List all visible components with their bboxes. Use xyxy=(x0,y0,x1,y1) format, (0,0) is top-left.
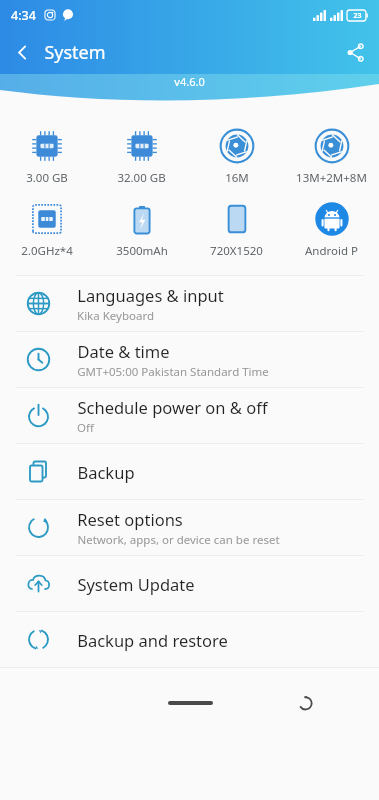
button[interactable]: 16M xyxy=(189,127,284,186)
staticText: Reset options xyxy=(77,508,183,530)
staticText: System Update xyxy=(77,573,195,595)
staticText: 32.00 GB xyxy=(117,170,166,186)
button[interactable]: 2.0GHz*4 xyxy=(0,200,94,259)
staticText: GMT+05:00 Pakistan Standard Time xyxy=(77,364,269,380)
staticText: Backup xyxy=(77,461,135,483)
staticText: System xyxy=(44,40,106,65)
button[interactable]: 720X1520 xyxy=(189,200,284,259)
staticText: Network, apps, or device can be reset xyxy=(77,532,280,548)
button[interactable]: Home xyxy=(145,683,235,723)
staticText: Schedule power on & off xyxy=(77,396,268,418)
button[interactable]: Back xyxy=(0,30,44,74)
staticText: 3.00 GB xyxy=(26,170,68,186)
staticText: Languages & input xyxy=(77,284,224,306)
button[interactable]: Back xyxy=(287,683,327,723)
staticText: 720X1520 xyxy=(210,243,263,259)
staticText: v4.6.0 xyxy=(174,74,205,89)
button[interactable]: Date & time xyxy=(0,332,379,387)
button[interactable]: Backup and restore xyxy=(0,612,379,667)
staticText: 13M+2M+8M xyxy=(296,170,367,186)
staticText: 4:34 xyxy=(11,7,36,24)
button[interactable]: Share xyxy=(331,30,379,74)
button[interactable]: Schedule power on & off xyxy=(0,388,379,443)
button[interactable]: 13M+2M+8M xyxy=(284,127,379,186)
staticText: 3500mAh xyxy=(116,243,168,259)
staticText: Off xyxy=(77,420,94,436)
staticText: Date & time xyxy=(77,340,170,362)
button[interactable]: Reset options xyxy=(0,500,379,555)
button[interactable]: 3500mAh xyxy=(94,200,189,259)
staticText: Backup and restore xyxy=(77,629,228,651)
button[interactable]: 32.00 GB xyxy=(94,127,189,186)
staticText: 16M xyxy=(225,170,249,186)
button[interactable]: Languages & input xyxy=(0,276,379,331)
button[interactable]: 3.00 GB xyxy=(0,127,94,186)
staticText: 23 xyxy=(353,11,362,21)
staticText: 2.0GHz*4 xyxy=(21,243,73,259)
button[interactable]: System Update xyxy=(0,556,379,611)
staticText: Android P xyxy=(305,243,358,259)
button[interactable]: Android P xyxy=(284,200,379,259)
staticText: Kika Keyboard xyxy=(77,308,154,324)
button[interactable]: Backup xyxy=(0,444,379,499)
